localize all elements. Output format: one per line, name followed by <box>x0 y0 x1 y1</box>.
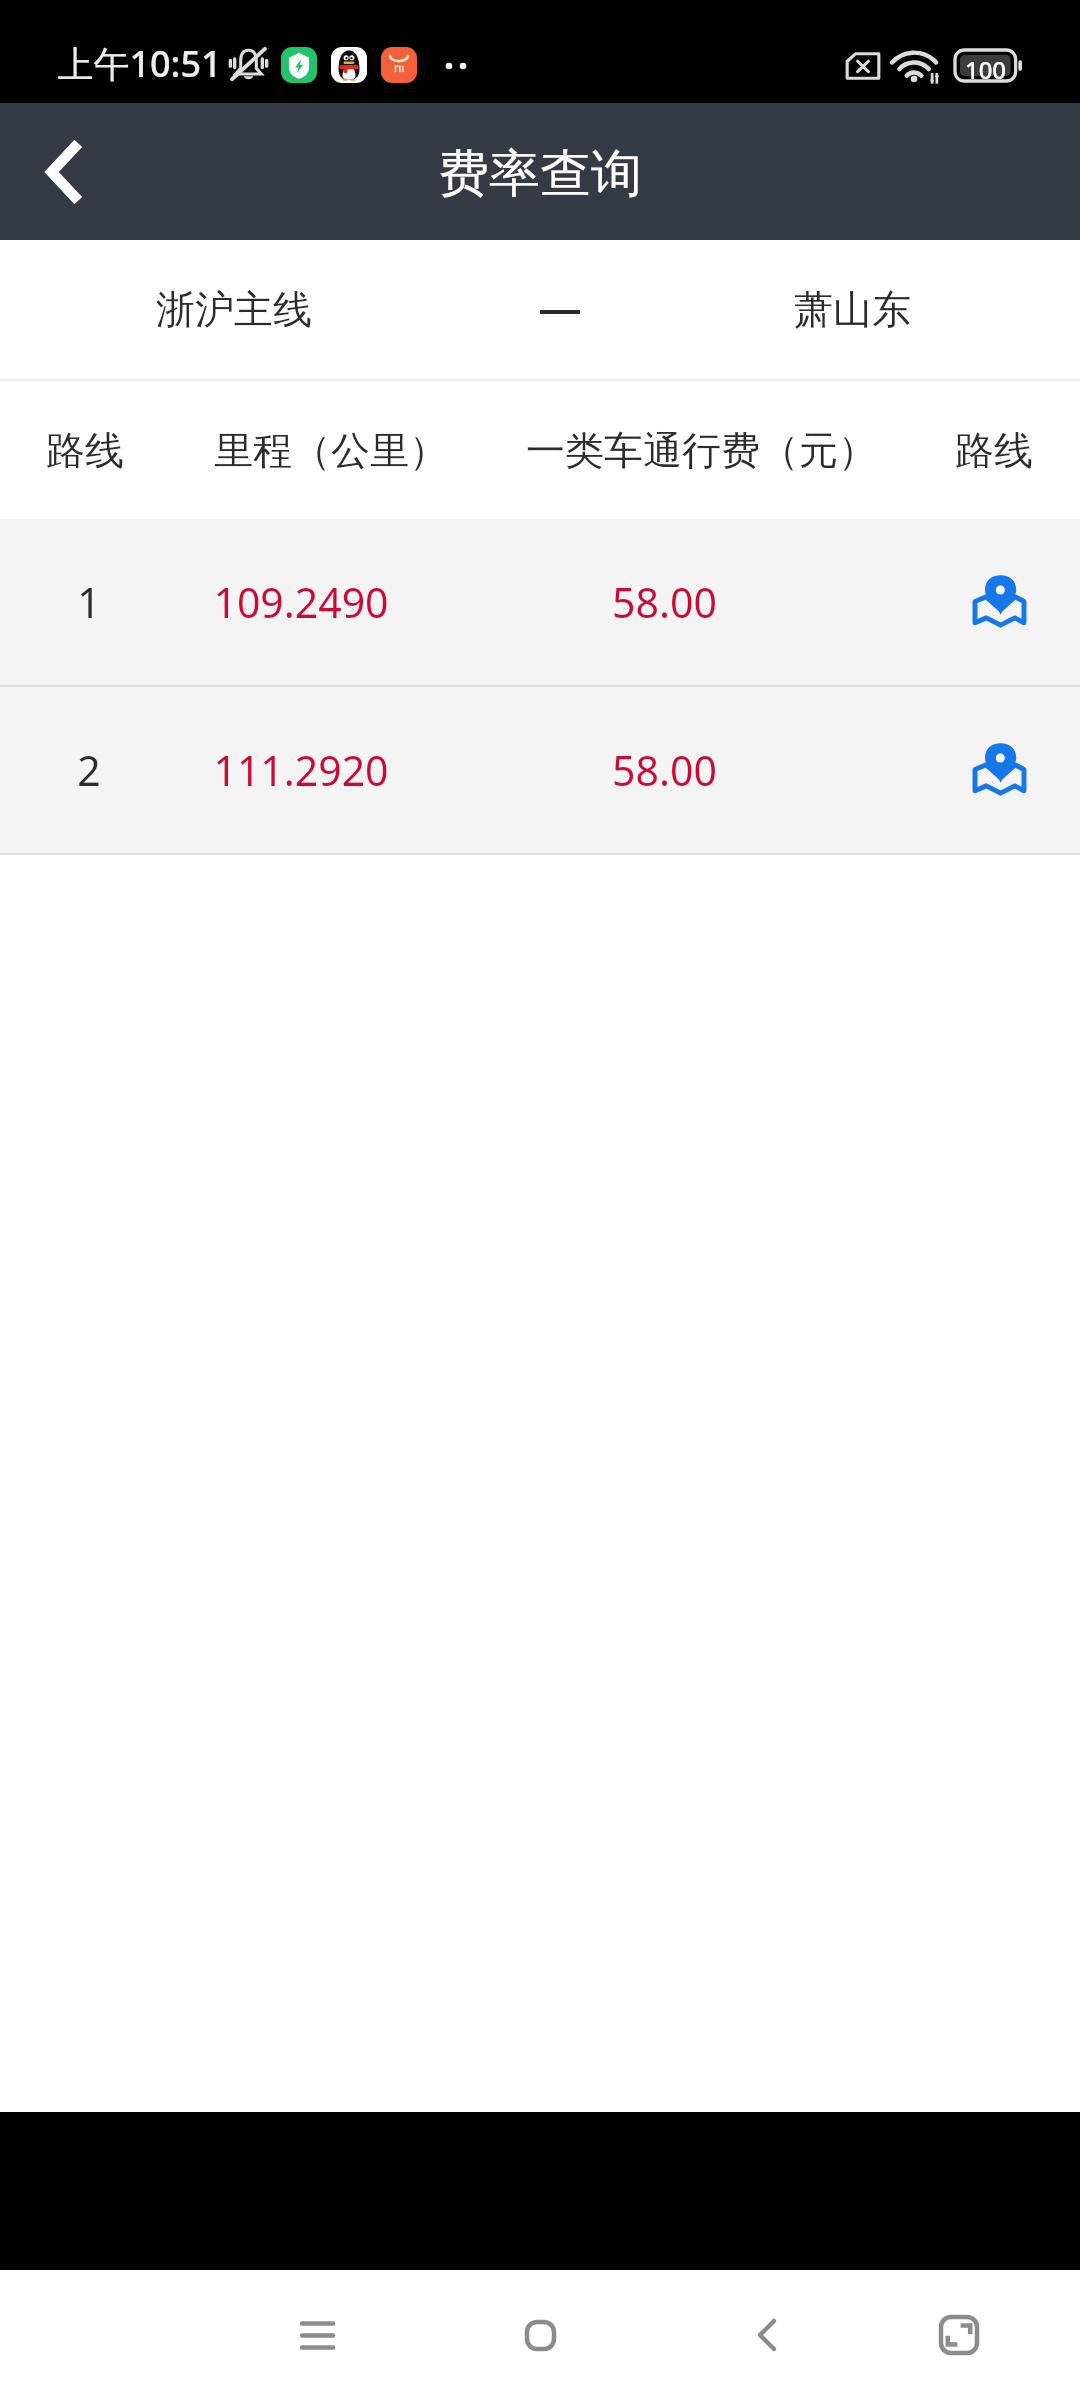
staticText: 费率查询 <box>438 142 642 206</box>
button[interactable]: Back <box>0 103 130 240</box>
staticText: 里程（公里） <box>214 426 448 475</box>
button[interactable]: 1 <box>0 519 1080 685</box>
staticText: 1 <box>77 574 101 630</box>
button[interactable]: Show route on map <box>910 687 1080 853</box>
staticText: 萧山东 <box>794 285 911 334</box>
button[interactable]: Split screen <box>894 2270 1024 2400</box>
button[interactable]: Home <box>475 2270 605 2400</box>
staticText: 路线 <box>46 426 124 475</box>
button[interactable]: Back <box>702 2270 832 2400</box>
button[interactable]: Recent apps <box>252 2270 382 2400</box>
button[interactable]: Show route on map <box>910 519 1080 685</box>
staticText: 路线 <box>955 426 1033 475</box>
staticText: 58.00 <box>612 574 717 630</box>
staticText: 111.2920 <box>213 742 389 798</box>
staticText: 一类车通行费（元） <box>526 426 877 475</box>
staticText: 58.00 <box>612 742 717 798</box>
staticText: 100 <box>960 53 1011 84</box>
staticText: 浙沪主线 <box>156 285 312 334</box>
staticText: 2 <box>77 742 101 798</box>
button[interactable]: 2 <box>0 687 1080 853</box>
staticText: 109.2490 <box>213 574 389 630</box>
staticText: 上午10:51 <box>57 39 222 88</box>
